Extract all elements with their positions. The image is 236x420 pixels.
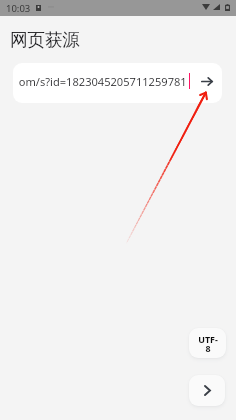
staticText: UTF- 8 — [198, 333, 218, 355]
button[interactable]: Go — [193, 63, 220, 101]
button[interactable]: https://baijiahao.baidu.com/s?id=1823045… — [19, 63, 198, 103]
button[interactable]: UTF- 8 — [189, 328, 226, 358]
staticText: https://baijiahao.baidu.com/s?id=1823045… — [19, 74, 198, 89]
button[interactable]: Next — [189, 375, 225, 406]
staticText: 10:03 — [6, 2, 31, 15]
staticText: 网页获源 — [10, 29, 80, 51]
